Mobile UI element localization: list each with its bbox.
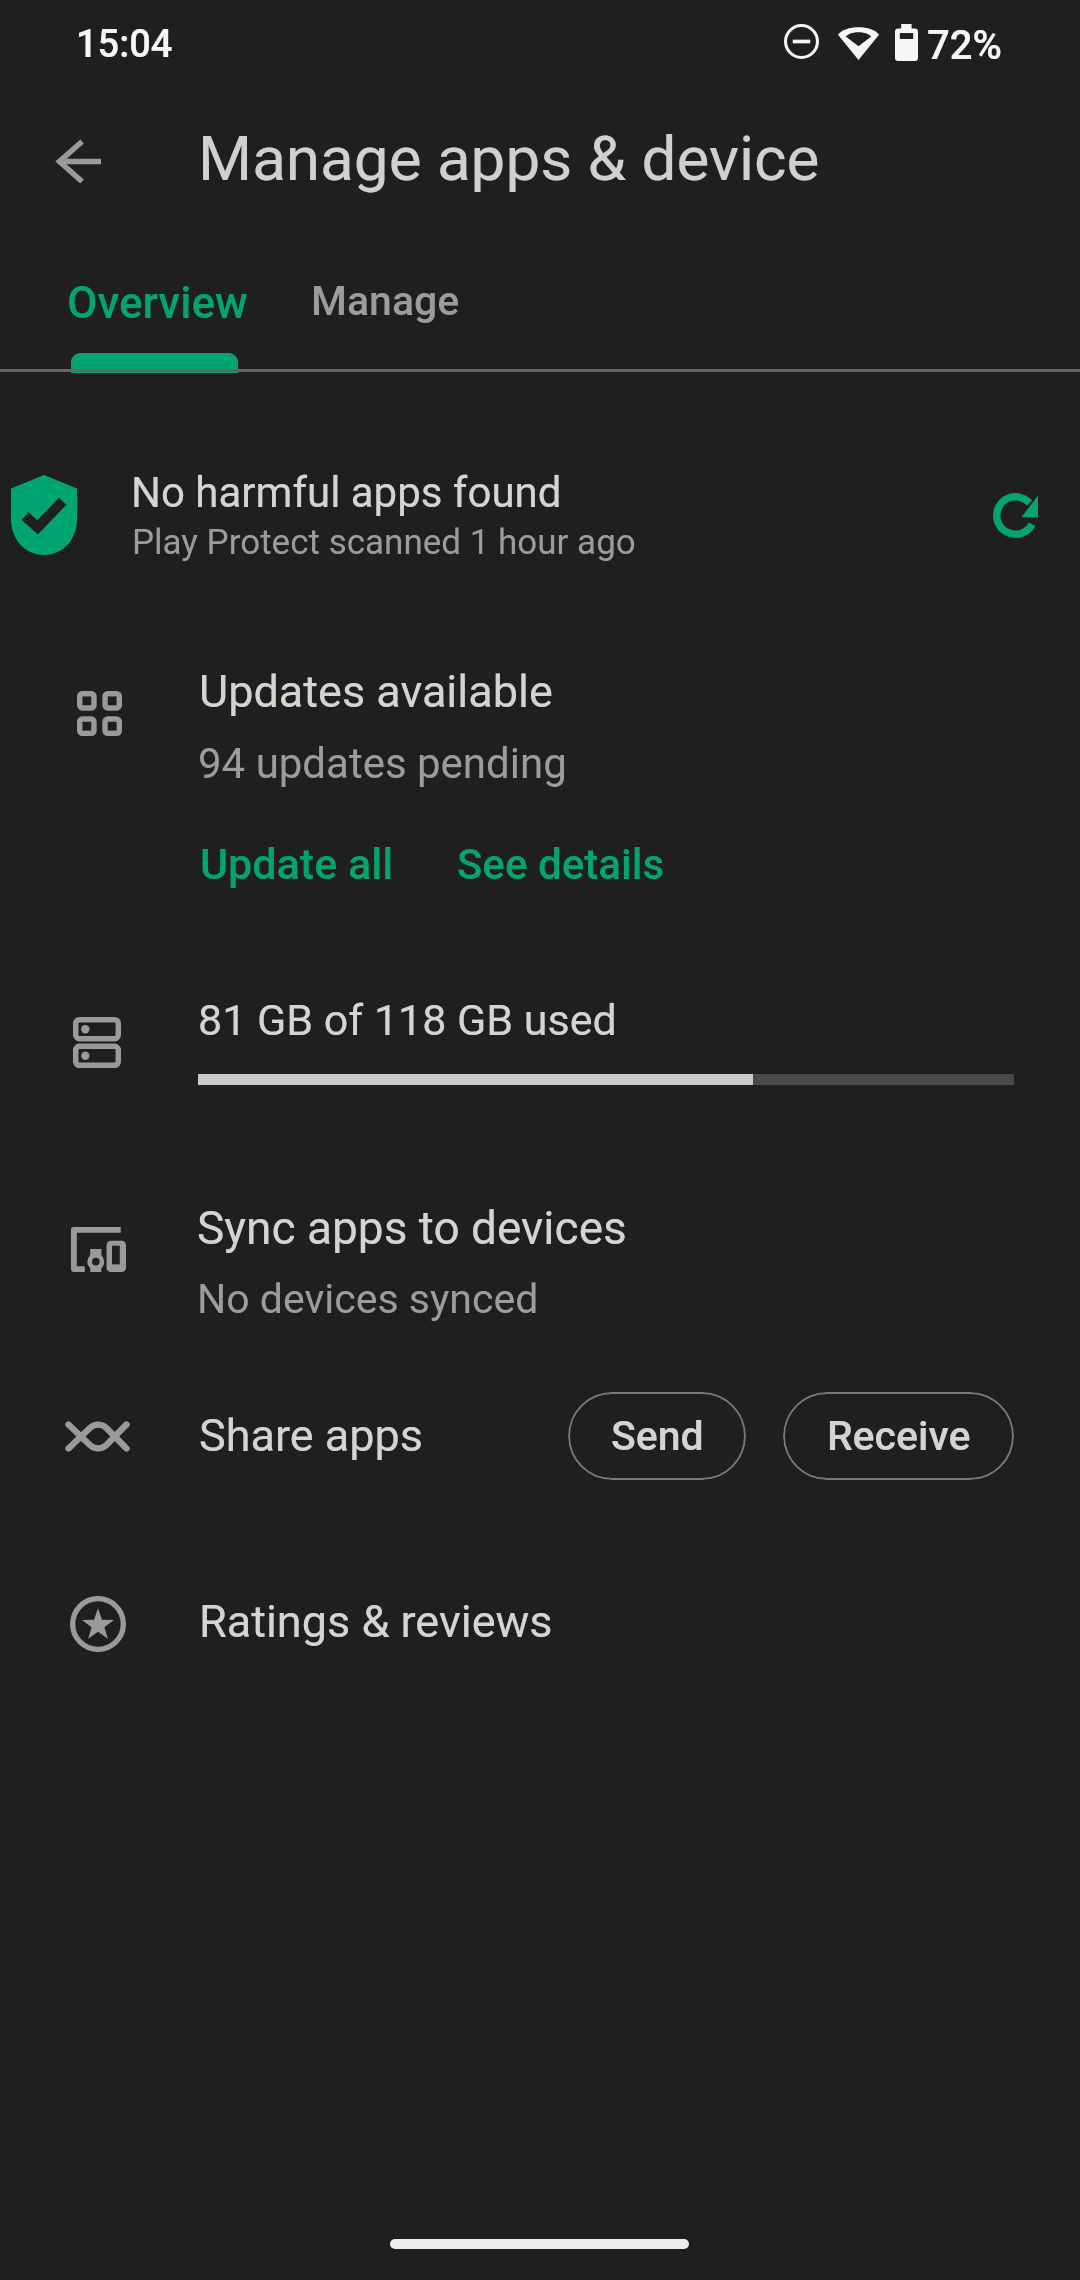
staticText: Play Protect scanned 1 hour ago xyxy=(132,522,636,563)
staticText: Ratings & reviews xyxy=(199,1595,553,1648)
button[interactable]: Overview xyxy=(0,243,307,371)
button[interactable]: 81 GB of 118 GB used xyxy=(0,980,1080,1110)
staticText: 94 updates pending xyxy=(198,739,567,788)
staticText: Update all xyxy=(200,839,394,889)
button[interactable]: Ratings & reviews xyxy=(0,1570,1080,1680)
staticText: 72% xyxy=(927,22,1002,69)
staticText: Receive xyxy=(827,1412,971,1460)
button[interactable]: Navigate up xyxy=(35,117,119,201)
button[interactable]: Receive xyxy=(783,1392,1014,1480)
button[interactable]: Send xyxy=(568,1392,746,1480)
staticText: Overview xyxy=(67,277,248,329)
staticText: Sync apps to devices xyxy=(197,1201,627,1255)
staticText: Updates available xyxy=(199,665,553,718)
button[interactable]: No harmful apps found xyxy=(0,420,1080,610)
button[interactable]: Rescan device xyxy=(971,471,1059,559)
button[interactable]: Manage xyxy=(307,243,557,371)
staticText: No harmful apps found xyxy=(131,468,562,517)
staticText: 81 GB of 118 GB used xyxy=(198,995,617,1045)
button[interactable]: Sync apps to devices xyxy=(0,1185,1080,1345)
staticText: 15:04 xyxy=(76,22,173,67)
staticText: No devices synced xyxy=(197,1275,539,1323)
staticText: Manage apps & device xyxy=(198,122,820,195)
button[interactable]: Update all xyxy=(189,829,405,901)
staticText: Send xyxy=(611,1412,704,1460)
staticText: Manage xyxy=(311,277,460,325)
staticText: See details xyxy=(457,840,665,889)
staticText: Share apps xyxy=(199,1409,424,1462)
button[interactable]: See details xyxy=(448,829,674,901)
button[interactable]: Updates available xyxy=(0,640,1080,780)
